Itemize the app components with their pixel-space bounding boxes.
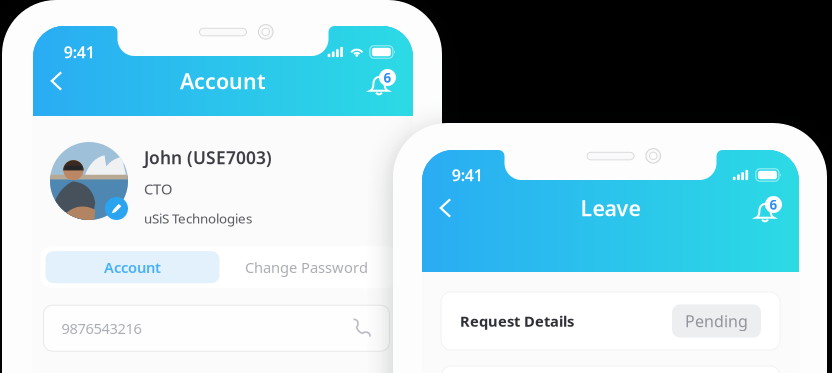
button[interactable]: Account (45, 251, 219, 283)
staticText: 9:41 (452, 164, 483, 186)
staticText: John (USE7003) (144, 146, 272, 169)
staticText: Request Details (460, 311, 574, 331)
staticText: Pending (685, 310, 748, 332)
staticText: Change Password (245, 257, 368, 277)
staticText: 6 (383, 69, 391, 86)
staticText: Leave (580, 194, 640, 222)
button[interactable]: Back (428, 191, 462, 225)
staticText: 6 (769, 196, 777, 213)
button[interactable]: Notifications (362, 64, 402, 98)
staticText: 9:41 (64, 41, 95, 63)
staticText: CTO (144, 179, 172, 198)
button[interactable]: Edit photo (105, 197, 128, 220)
staticText: Account (180, 67, 266, 95)
button[interactable]: Back (39, 64, 73, 98)
staticText: Account (104, 257, 161, 277)
button[interactable]: Notifications (748, 191, 788, 225)
staticText: 9876543216 (61, 318, 141, 338)
staticText: uSiS Technologies (144, 209, 252, 227)
button[interactable]: Change Password (219, 251, 393, 283)
